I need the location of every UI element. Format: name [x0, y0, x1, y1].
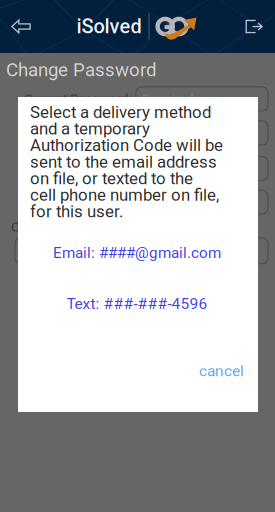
staticText: iSolved: [76, 15, 141, 38]
button[interactable]: Text: ###-###-4596: [30, 295, 244, 313]
staticText: Required: [142, 125, 194, 141]
staticText: Text: ###-###-4596: [66, 295, 207, 313]
staticText: Change Password: [6, 59, 157, 81]
staticText: cancel: [199, 362, 244, 380]
button[interactable]: Log out: [233, 0, 275, 53]
staticText: Confirm New Password:: [54, 153, 132, 184]
staticText: Security Question:: [27, 194, 132, 210]
button[interactable]: Back: [0, 0, 42, 53]
staticText: Required: [142, 161, 194, 176]
staticText: Required: [142, 91, 194, 107]
staticText: Current Password:: [24, 91, 132, 107]
button[interactable]: Email: ####@gmail.com: [30, 244, 244, 262]
staticText: New Password:: [40, 125, 132, 141]
button[interactable]: cancel: [30, 360, 244, 382]
staticText: Challenge Answer:: [11, 219, 119, 235]
staticText: Email: ####@gmail.com: [53, 244, 221, 262]
staticText: Select a delivery method and a temporary…: [30, 104, 223, 220]
